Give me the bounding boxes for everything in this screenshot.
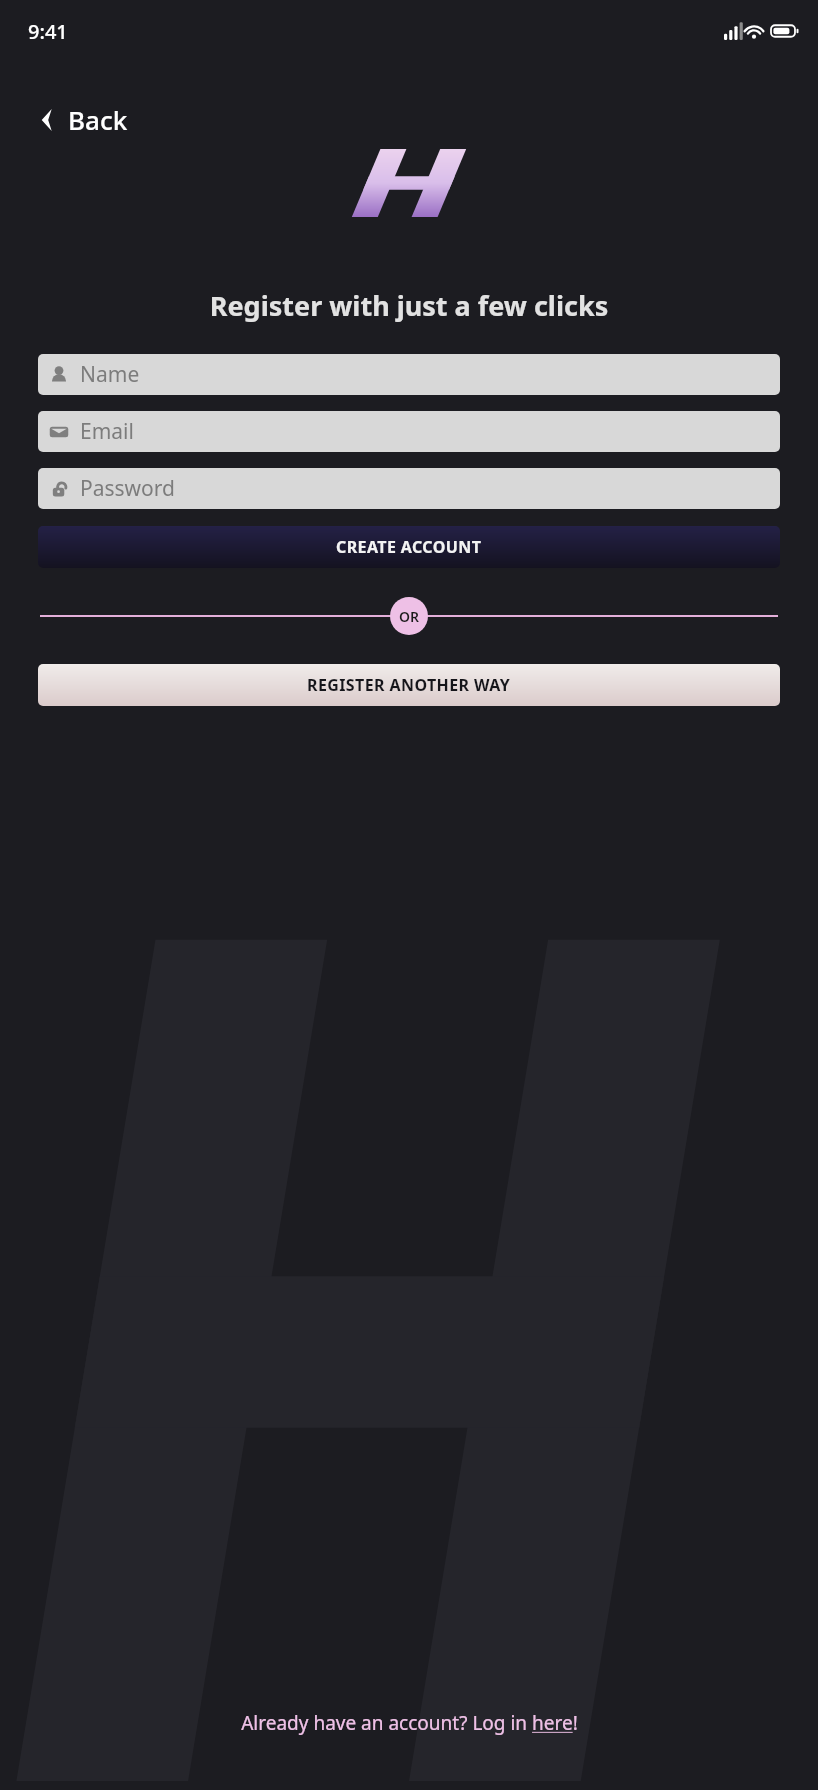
staticText: 9:41: [28, 18, 68, 45]
staticText: Back: [68, 102, 128, 137]
button[interactable]: Password: [38, 468, 780, 509]
other: Back: [28, 103, 62, 137]
staticText: Email: [80, 417, 134, 446]
button[interactable]: Name: [38, 354, 780, 395]
staticText: Name: [80, 360, 140, 389]
staticText: OR: [399, 607, 420, 626]
staticText: Register with just a few clicks: [0, 287, 818, 324]
staticText: Password: [80, 474, 175, 503]
button[interactable]: Email: [38, 411, 780, 452]
staticText: REGISTER ANOTHER WAY: [307, 674, 511, 696]
button[interactable]: Back: [28, 102, 128, 137]
staticText: Already have an account? Log in here!: [241, 1710, 578, 1736]
staticText: CREATE ACCOUNT: [336, 536, 482, 558]
button[interactable]: REGISTER ANOTHER WAY: [38, 664, 780, 706]
button[interactable]: Already have an account? Log in here!: [0, 1710, 818, 1736]
button[interactable]: CREATE ACCOUNT: [38, 526, 780, 568]
